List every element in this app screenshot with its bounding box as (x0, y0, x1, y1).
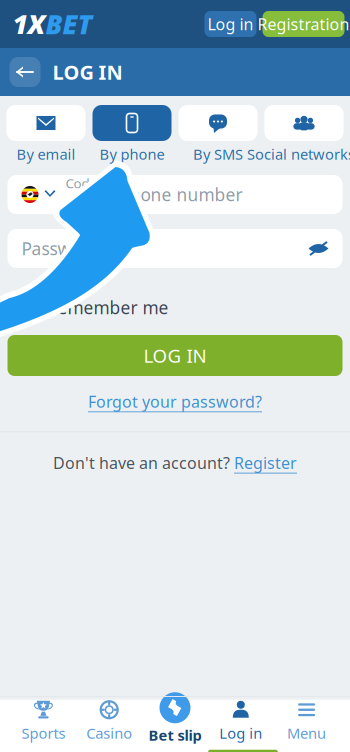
button[interactable]: Bet slip (142, 692, 208, 745)
button[interactable]: By SMS (178, 105, 257, 161)
button[interactable]: Register (234, 452, 297, 473)
button[interactable] (7, 186, 65, 203)
staticText: Menu (287, 723, 326, 743)
staticText: Phone number (119, 183, 242, 206)
staticText: Social networks (247, 144, 350, 164)
staticText: BET (45, 6, 92, 42)
button[interactable]: LOG IN (7, 335, 342, 376)
staticText: LOG IN (143, 343, 206, 368)
button[interactable]: Log in (208, 694, 274, 743)
staticText: Don't have an account? (53, 452, 230, 473)
staticText: Bet slip (148, 725, 201, 745)
button[interactable]: Menu (274, 694, 339, 743)
button[interactable]: 1xBet home (0, 0, 92, 48)
button[interactable]: Casino (76, 694, 142, 743)
staticText: Password* (21, 237, 109, 260)
button[interactable]: Forgot your password? (88, 385, 262, 418)
staticText: Sports (21, 723, 65, 743)
button[interactable]: Social networks (264, 105, 343, 161)
button[interactable]: Remember me (0, 298, 350, 317)
staticText: Registration (257, 13, 349, 35)
staticText: Code (65, 174, 97, 192)
button[interactable]: Show password (308, 241, 342, 255)
staticText: Remember me (46, 296, 168, 319)
staticText: By email (16, 144, 75, 164)
button[interactable]: Log in (204, 11, 256, 37)
staticText: 1X (12, 6, 45, 42)
staticText: LOG IN (52, 59, 122, 85)
staticText: Log in (207, 13, 253, 35)
button[interactable]: Sports (10, 694, 76, 743)
button[interactable]: Back (9, 57, 40, 87)
staticText: By phone (99, 144, 164, 164)
staticText: Forgot your password? (88, 391, 262, 412)
staticText: Log in (219, 723, 262, 743)
staticText: Casino (86, 723, 132, 743)
staticText: +256 (65, 192, 105, 215)
button[interactable]: By email (6, 105, 85, 161)
staticText: By SMS (193, 144, 243, 164)
button[interactable]: By phone (92, 105, 171, 161)
staticText: Register (234, 452, 297, 473)
button[interactable]: Registration (262, 11, 344, 37)
